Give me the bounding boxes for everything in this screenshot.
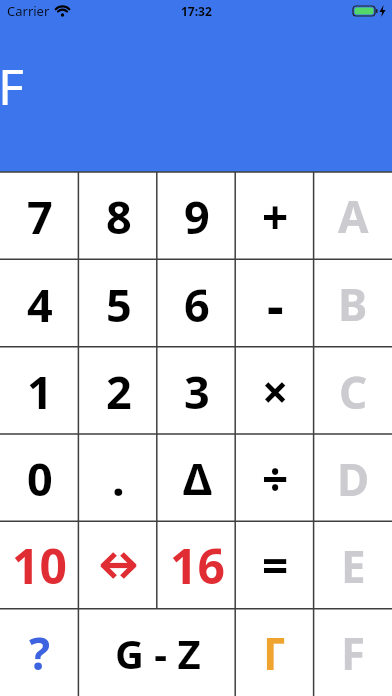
staticText: 5 [106,274,132,335]
staticText: 7 [27,186,53,247]
staticText: 1 [27,361,53,422]
staticText: C [339,362,368,422]
button[interactable]: 4 [0,260,79,348]
button[interactable]: 3 [158,348,236,435]
staticText: 6 [184,274,210,335]
button[interactable]: F [314,609,392,696]
button[interactable]: C [314,348,392,435]
button[interactable]: 5 [79,260,158,348]
button[interactable]: = [236,522,314,609]
staticText: 9 [184,186,210,247]
staticText: 4 [27,274,53,335]
button[interactable] [79,522,158,609]
staticText: B [338,274,368,334]
button[interactable]: - [236,260,314,348]
button[interactable]: 10 [0,522,79,609]
button[interactable]: 8 [79,172,158,260]
staticText: 17:32 [181,3,212,19]
button[interactable]: Γ [236,609,314,696]
button[interactable]: Δ [158,435,236,522]
staticText: . [112,448,125,509]
staticText: 3 [184,361,210,422]
staticText: - [267,269,284,340]
button[interactable]: 16 [158,522,236,609]
staticText: F [341,623,366,683]
staticText: × [262,360,289,423]
button[interactable]: × [236,348,314,435]
staticText: Carrier [7,2,50,20]
button[interactable]: D [314,435,392,522]
button[interactable]: 1 [0,348,79,435]
button[interactable]: 2 [79,348,158,435]
staticText: 0 [27,448,53,509]
staticText: 8 [106,186,132,247]
staticText: 2 [106,361,132,422]
button[interactable]: G - Z [79,609,236,696]
staticText: D [337,449,370,509]
staticText: E [341,536,366,596]
button[interactable]: 9 [158,172,236,260]
button[interactable]: ÷ [236,435,314,522]
staticText: ? [29,623,50,683]
staticText: + [262,185,289,248]
staticText: A [338,186,369,246]
button[interactable]: 0 [0,435,79,522]
button[interactable]: E [314,522,392,609]
staticText: Γ [263,623,287,683]
staticText: = [262,534,289,597]
button[interactable]: 6 [158,260,236,348]
button[interactable]: . [79,435,158,522]
staticText: ÷ [262,447,289,510]
staticText: 16 [170,533,225,598]
button[interactable]: + [236,172,314,260]
button[interactable]: 7 [0,172,79,260]
staticText: Δ [183,449,212,508]
staticText: F [0,52,24,120]
button[interactable]: B [314,260,392,348]
staticText: 10 [12,533,67,598]
button[interactable]: A [314,172,392,260]
staticText: G - Z [115,626,201,680]
button[interactable]: ? [0,609,79,696]
